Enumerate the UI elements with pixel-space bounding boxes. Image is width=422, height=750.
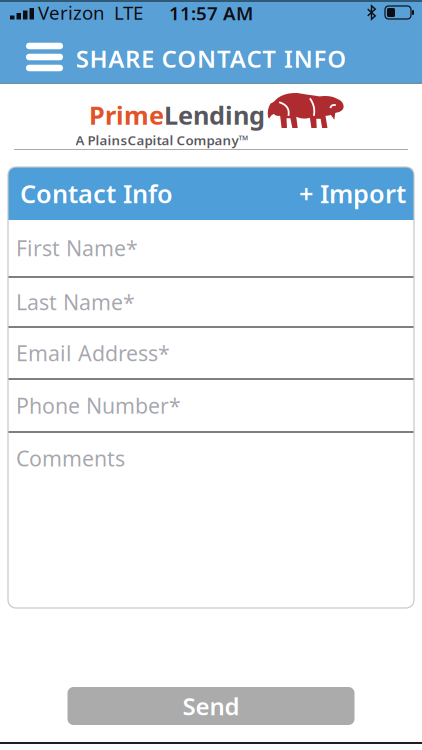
staticText: Lending (164, 98, 265, 132)
staticText: 11:57 AM (169, 1, 253, 25)
staticText: + Import (299, 177, 406, 210)
staticText: Last Name* (16, 288, 135, 316)
staticText: Comments (16, 444, 125, 472)
staticText: SHARE CONTACT INFO (76, 43, 346, 74)
button[interactable]: + Import (299, 177, 406, 210)
staticText: Contact Info (20, 177, 173, 210)
staticText: Verizon (38, 0, 105, 25)
button[interactable]: Send (67, 687, 354, 725)
staticText: First Name* (16, 234, 138, 262)
staticText: Email Address* (16, 339, 170, 367)
staticText: A PlainsCapital Company™ (75, 131, 248, 149)
staticText: Phone Number* (16, 391, 181, 420)
staticText: LTE (114, 0, 143, 25)
button[interactable]: Menu (0, 36, 63, 71)
staticText: Prime (89, 98, 164, 132)
staticText: Send (182, 690, 239, 722)
